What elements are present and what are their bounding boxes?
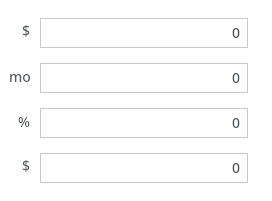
staticText: mo	[9, 67, 31, 86]
staticText: 0	[231, 23, 240, 42]
staticText: %	[18, 112, 30, 131]
staticText: 0	[231, 113, 240, 132]
button[interactable]: Monthly payment in dollars input	[40, 153, 248, 183]
button[interactable]: Interest rate percent input	[40, 108, 248, 138]
staticText: $	[22, 156, 31, 175]
button[interactable]: Loan term in months input	[40, 63, 248, 93]
button[interactable]: Loan term in months	[0, 63, 272, 93]
staticText: $	[22, 21, 31, 40]
button[interactable]: Interest rate percent	[0, 108, 272, 138]
staticText: 0	[231, 158, 240, 177]
staticText: 0	[231, 68, 240, 87]
button[interactable]: Monthly payment in dollars	[0, 153, 272, 183]
button[interactable]: Loan amount in dollars	[0, 18, 272, 48]
button[interactable]: Loan amount in dollars input	[40, 18, 248, 48]
